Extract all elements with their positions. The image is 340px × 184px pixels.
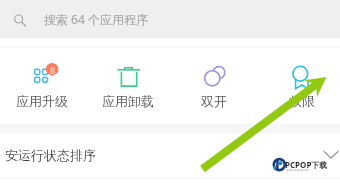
staticText: 安运行状态排序 [5, 147, 96, 163]
button[interactable]: 双开 [174, 59, 254, 108]
staticText: www.pcpop.com [286, 168, 310, 172]
button[interactable]: 搜索 64 个应用程序 [0, 0, 340, 38]
staticText: 权限 [289, 93, 315, 108]
staticText: 双开 [201, 93, 227, 108]
staticText: 8 [50, 64, 56, 76]
button[interactable]: 8 [2, 59, 82, 108]
button[interactable]: 权限 [262, 59, 340, 108]
other: Expand [320, 145, 340, 165]
staticText: PCPOP下载 [285, 159, 328, 170]
staticText: 应用卸载 [102, 93, 154, 108]
staticText: 应用升级 [16, 93, 68, 108]
button[interactable]: 应用卸载 [88, 59, 168, 108]
staticText: 搜索 64 个应用程序 [44, 11, 148, 27]
button[interactable]: 安运行状态排序 [0, 133, 340, 176]
